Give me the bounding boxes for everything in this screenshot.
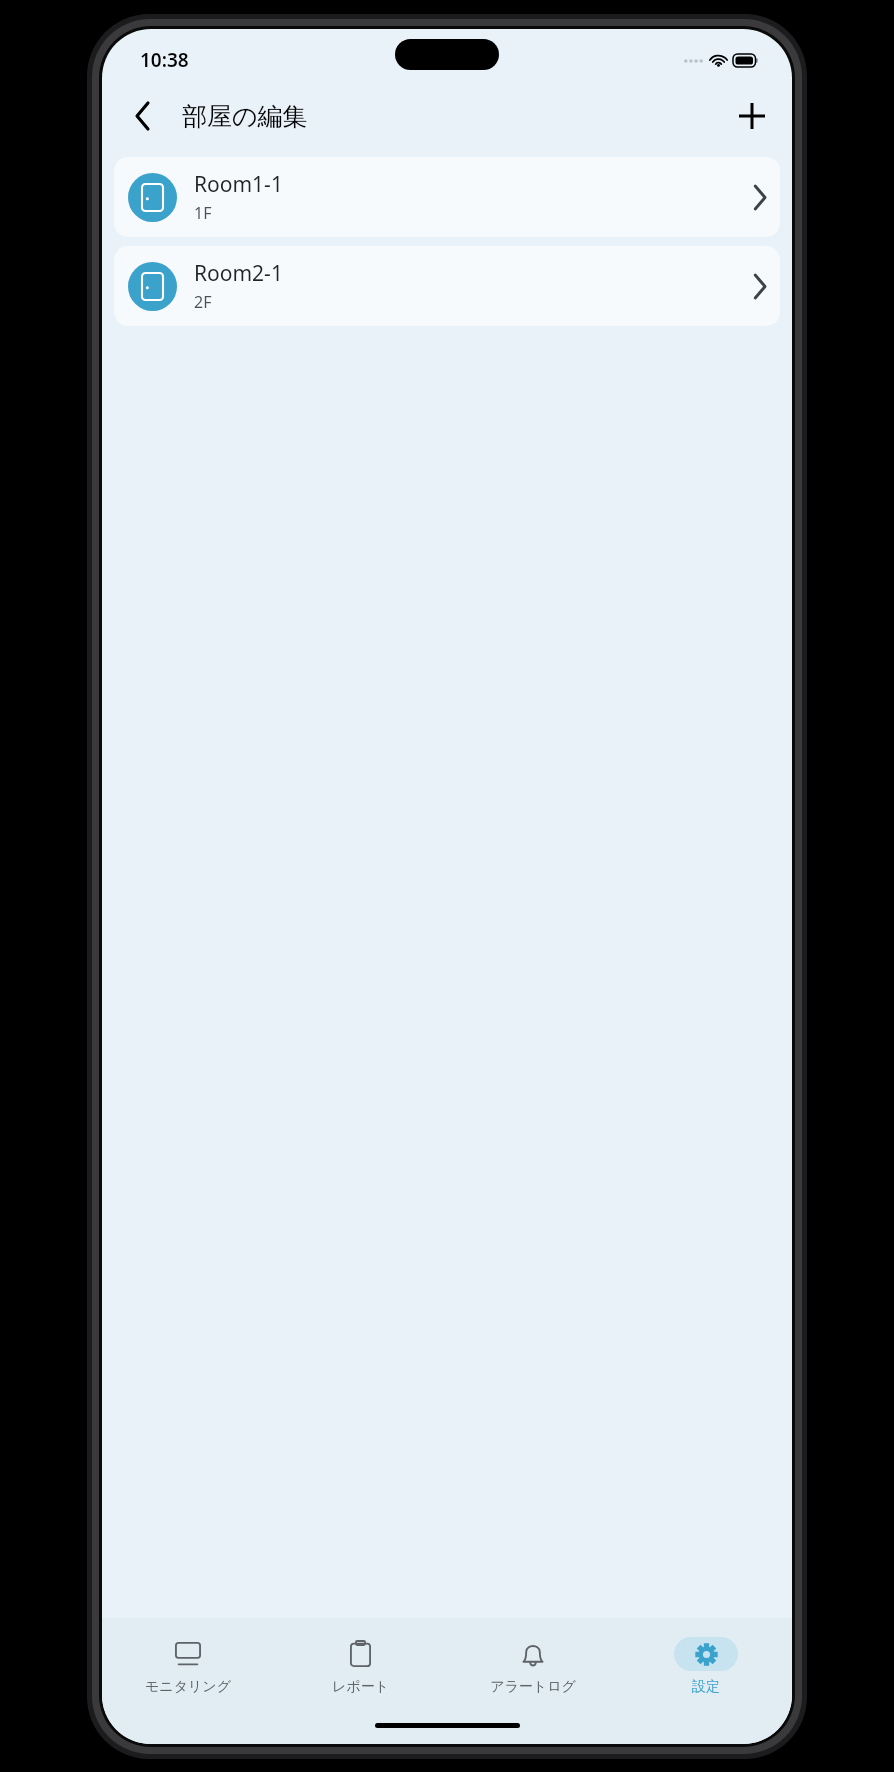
- button[interactable]: Back: [118, 92, 166, 140]
- staticText: 2F: [194, 291, 212, 313]
- button[interactable]: レポート: [274, 1618, 446, 1714]
- button[interactable]: Add: [728, 92, 776, 140]
- staticText: レポート: [332, 1678, 389, 1696]
- staticText: Room1-1: [194, 170, 283, 199]
- staticText: Room2-1: [194, 259, 283, 288]
- staticText: 1F: [194, 202, 212, 224]
- staticText: 部屋の編集: [182, 101, 308, 132]
- button[interactable]: 設定: [619, 1618, 792, 1714]
- button[interactable]: Room2-1: [114, 246, 780, 326]
- staticText: 設定: [692, 1678, 720, 1696]
- staticText: 10:38: [140, 47, 189, 73]
- button[interactable]: Room1-1: [114, 157, 780, 237]
- button[interactable]: モニタリング: [102, 1618, 274, 1714]
- staticText: アラートログ: [490, 1678, 576, 1696]
- staticText: モニタリング: [145, 1678, 231, 1696]
- button[interactable]: アラートログ: [446, 1618, 619, 1714]
